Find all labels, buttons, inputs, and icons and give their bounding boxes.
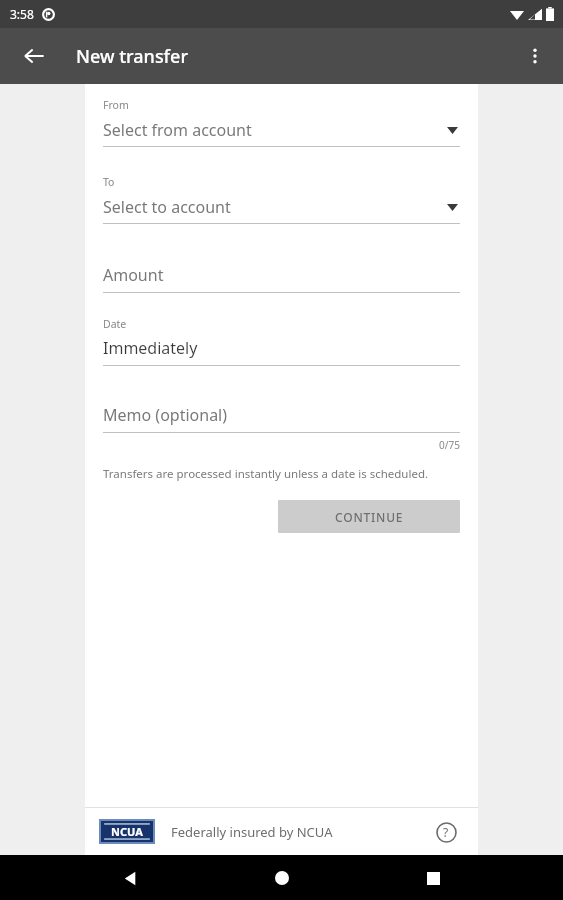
button[interactable]: Help [428,814,464,850]
staticText: Date [103,317,127,331]
staticText: Immediately [103,337,198,359]
button[interactable]: CONTINUE [278,500,460,533]
staticText: Federally insured by NCUA [171,823,428,841]
staticText: ? [443,824,449,840]
staticText: CONTINUE [335,509,404,525]
staticText: 0/75 [103,438,460,452]
staticText: 3:58 [10,6,34,22]
button[interactable]: Home [260,856,304,900]
staticText: NCUA [111,824,143,839]
staticText: Select to account [103,196,447,218]
staticText: Amount [103,264,164,286]
button[interactable]: From [103,98,460,147]
staticText: Memo (optional) [103,404,228,426]
button[interactable]: To [103,175,460,224]
button[interactable]: Memo (optional) [103,404,460,433]
staticText: New transfer [76,44,188,69]
staticText: Select from account [103,119,447,141]
staticText: To [103,175,115,189]
button[interactable]: More options [513,34,557,78]
button[interactable]: Back [12,34,56,78]
button[interactable]: Recent apps [411,856,455,900]
staticText: From [103,98,129,112]
button[interactable]: Back [108,856,152,900]
staticText: Transfers are processed instantly unless… [103,466,429,482]
button[interactable]: Date [103,317,460,366]
button[interactable]: Amount [103,264,460,293]
